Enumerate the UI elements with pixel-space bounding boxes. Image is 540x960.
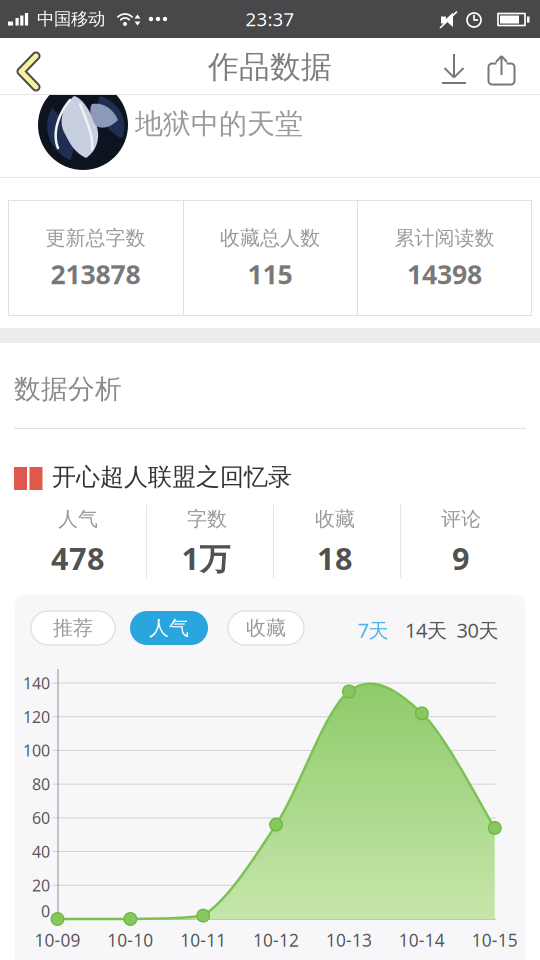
staticText: 人气 [149, 616, 189, 640]
staticText: 累计阅读数 [394, 226, 494, 250]
staticText: 10-12 [253, 928, 299, 951]
staticText: 18 [317, 538, 353, 578]
staticText: 20 [32, 875, 50, 896]
staticText: 字数 [187, 507, 227, 531]
staticText: 中国移动 [37, 8, 105, 30]
staticText: 478 [51, 538, 105, 578]
staticText: 10-14 [399, 928, 445, 951]
staticText: 10-09 [34, 928, 80, 951]
staticText: 更新总字数 [45, 226, 145, 250]
staticText: 14天 [405, 617, 447, 643]
staticText: 30天 [456, 617, 498, 643]
staticText: 120 [23, 706, 50, 727]
staticText: 100 [23, 740, 50, 761]
staticText: 人气 [58, 507, 98, 531]
staticText: 14398 [407, 256, 482, 292]
staticText: 60 [32, 807, 50, 828]
staticText: 40 [32, 841, 50, 862]
staticText: 评论 [441, 507, 481, 531]
button[interactable]: 7天 [357, 617, 388, 643]
button[interactable] [0, 0, 540, 960]
button[interactable]: 30天 [456, 617, 498, 643]
button[interactable]: 14天 [405, 617, 447, 643]
staticText: 10-15 [472, 928, 518, 951]
staticText: 140 [23, 672, 50, 694]
button[interactable]: 收藏 [228, 611, 304, 645]
button[interactable]: 开心超人联盟之回忆录 [0, 0, 540, 960]
staticText: 推荐 [53, 616, 93, 640]
staticText: 23:37 [245, 7, 294, 31]
staticText: 作品数据 [208, 48, 332, 86]
button[interactable]: 推荐 [31, 611, 115, 645]
staticText: 213878 [50, 256, 140, 292]
staticText: 0 [41, 900, 50, 922]
staticText: 115 [247, 256, 292, 292]
staticText: 10-11 [180, 928, 226, 951]
staticText: 收藏总人数 [220, 226, 320, 250]
staticText: 开心超人联盟之回忆录 [52, 462, 292, 492]
staticText: 地狱中的天堂 [135, 107, 303, 141]
staticText: 数据分析 [14, 373, 122, 405]
button[interactable]: 人气 [130, 611, 208, 645]
staticText: 7天 [357, 617, 388, 643]
staticText: 80 [32, 773, 50, 795]
staticText: 收藏 [246, 616, 286, 640]
staticText: 10-13 [326, 928, 372, 951]
staticText: 收藏 [315, 507, 355, 531]
button[interactable] [0, 0, 540, 960]
button[interactable] [0, 0, 540, 960]
staticText: 9 [452, 538, 470, 578]
staticText: 1万 [181, 538, 230, 578]
staticText: 10-10 [107, 928, 153, 951]
